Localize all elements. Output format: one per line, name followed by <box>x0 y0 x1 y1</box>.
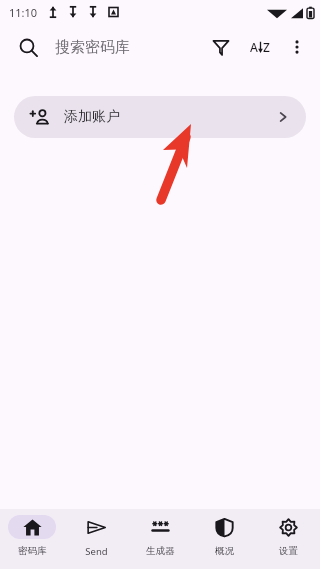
button[interactable]: 密码库 <box>0 509 64 569</box>
button[interactable]: 搜索密码库 <box>46 24 202 70</box>
staticText: 生成器 <box>146 545 175 557</box>
staticText: 概况 <box>215 545 234 557</box>
button[interactable]: Send <box>64 509 128 569</box>
staticText: 密码库 <box>18 545 47 557</box>
staticText: 11:10 <box>9 5 38 20</box>
button[interactable]: Search <box>10 29 46 65</box>
staticText: Z <box>263 39 270 55</box>
button[interactable]: 添加账户 <box>14 96 306 138</box>
button[interactable]: Sort A to Z <box>240 27 280 67</box>
staticText: 搜索密码库 <box>55 38 130 57</box>
staticText: 添加账户 <box>64 108 120 126</box>
button[interactable]: 概况 <box>192 509 256 569</box>
staticText: A <box>250 39 258 55</box>
button[interactable]: More options <box>280 30 314 64</box>
button[interactable]: 生成器 <box>128 509 192 569</box>
button[interactable]: 设置 <box>256 509 320 569</box>
button[interactable]: Filter <box>202 28 240 66</box>
staticText: 设置 <box>279 545 298 557</box>
staticText: Send <box>85 545 108 558</box>
